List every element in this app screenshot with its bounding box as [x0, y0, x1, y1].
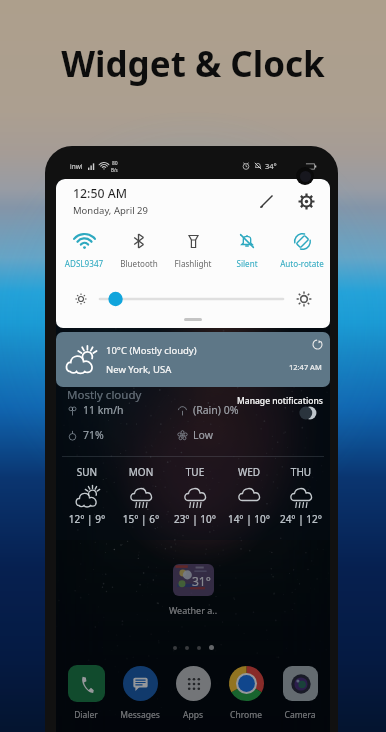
staticText: Apps — [167, 709, 219, 721]
staticText: New York, USA — [106, 363, 172, 376]
staticText: Chrome — [220, 709, 272, 721]
staticText: Widget & Clock — [0, 40, 386, 88]
staticText: Flashlight — [166, 258, 220, 269]
button[interactable]: Edit — [255, 190, 277, 212]
staticText: Auto-rotate — [275, 258, 329, 269]
staticText: 14° | 10° — [222, 512, 276, 526]
button[interactable]: ADSL9347 — [57, 230, 111, 270]
staticText: Silent — [220, 258, 274, 269]
staticText: ADSL9347 — [57, 258, 111, 269]
button[interactable]: Dialer — [60, 664, 112, 721]
staticText: 31° — [192, 573, 211, 589]
staticText: 80 — [112, 160, 118, 167]
button[interactable]: Auto-rotate — [275, 230, 329, 270]
staticText: 15° | 6° — [114, 512, 168, 526]
staticText: Manage notifications — [237, 395, 323, 407]
staticText: Monday, April 29 — [73, 204, 148, 217]
staticText: Messages — [114, 709, 166, 721]
staticText: 10°C (Mostly cloudy) — [106, 344, 197, 357]
staticText: WED — [222, 465, 276, 479]
staticText: Low — [193, 428, 213, 442]
button[interactable]: Settings — [295, 190, 317, 212]
button[interactable]: 10°C (Mostly cloudy) — [56, 332, 330, 387]
staticText: Dialer — [60, 709, 112, 721]
button[interactable]: Camera — [274, 664, 326, 721]
staticText: SUN — [60, 465, 114, 479]
button[interactable]: Messages — [114, 664, 166, 721]
staticText: (Rain) 0% — [193, 403, 239, 417]
button[interactable]: Flashlight — [166, 230, 220, 270]
staticText: inwi — [70, 162, 83, 171]
button[interactable]: Silent — [220, 230, 274, 270]
staticText: 12:47 AM — [289, 362, 322, 372]
staticText: 71% — [83, 428, 104, 442]
staticText: 12° | 9° — [60, 512, 114, 526]
staticText: 23° | 10° — [168, 512, 222, 526]
staticText: 11 km/h — [83, 403, 124, 417]
staticText: 34° — [265, 161, 277, 171]
button[interactable]: Weather app — [173, 564, 214, 596]
button[interactable]: Bluetooth — [112, 230, 166, 270]
button[interactable]: Chrome — [220, 664, 272, 721]
staticText: MON — [114, 465, 168, 479]
staticText: B/s — [111, 167, 118, 173]
staticText: 12:50 AM — [73, 185, 128, 202]
staticText: THU — [276, 465, 326, 479]
staticText: Bluetooth — [112, 258, 166, 269]
button[interactable]: Apps — [167, 664, 219, 721]
staticText: Camera — [274, 709, 326, 721]
staticText: 24° | 12° — [276, 512, 326, 526]
staticText: TUE — [168, 465, 222, 479]
staticText: Weather a.. — [56, 604, 330, 616]
staticText: Mostly cloudy — [67, 387, 142, 403]
